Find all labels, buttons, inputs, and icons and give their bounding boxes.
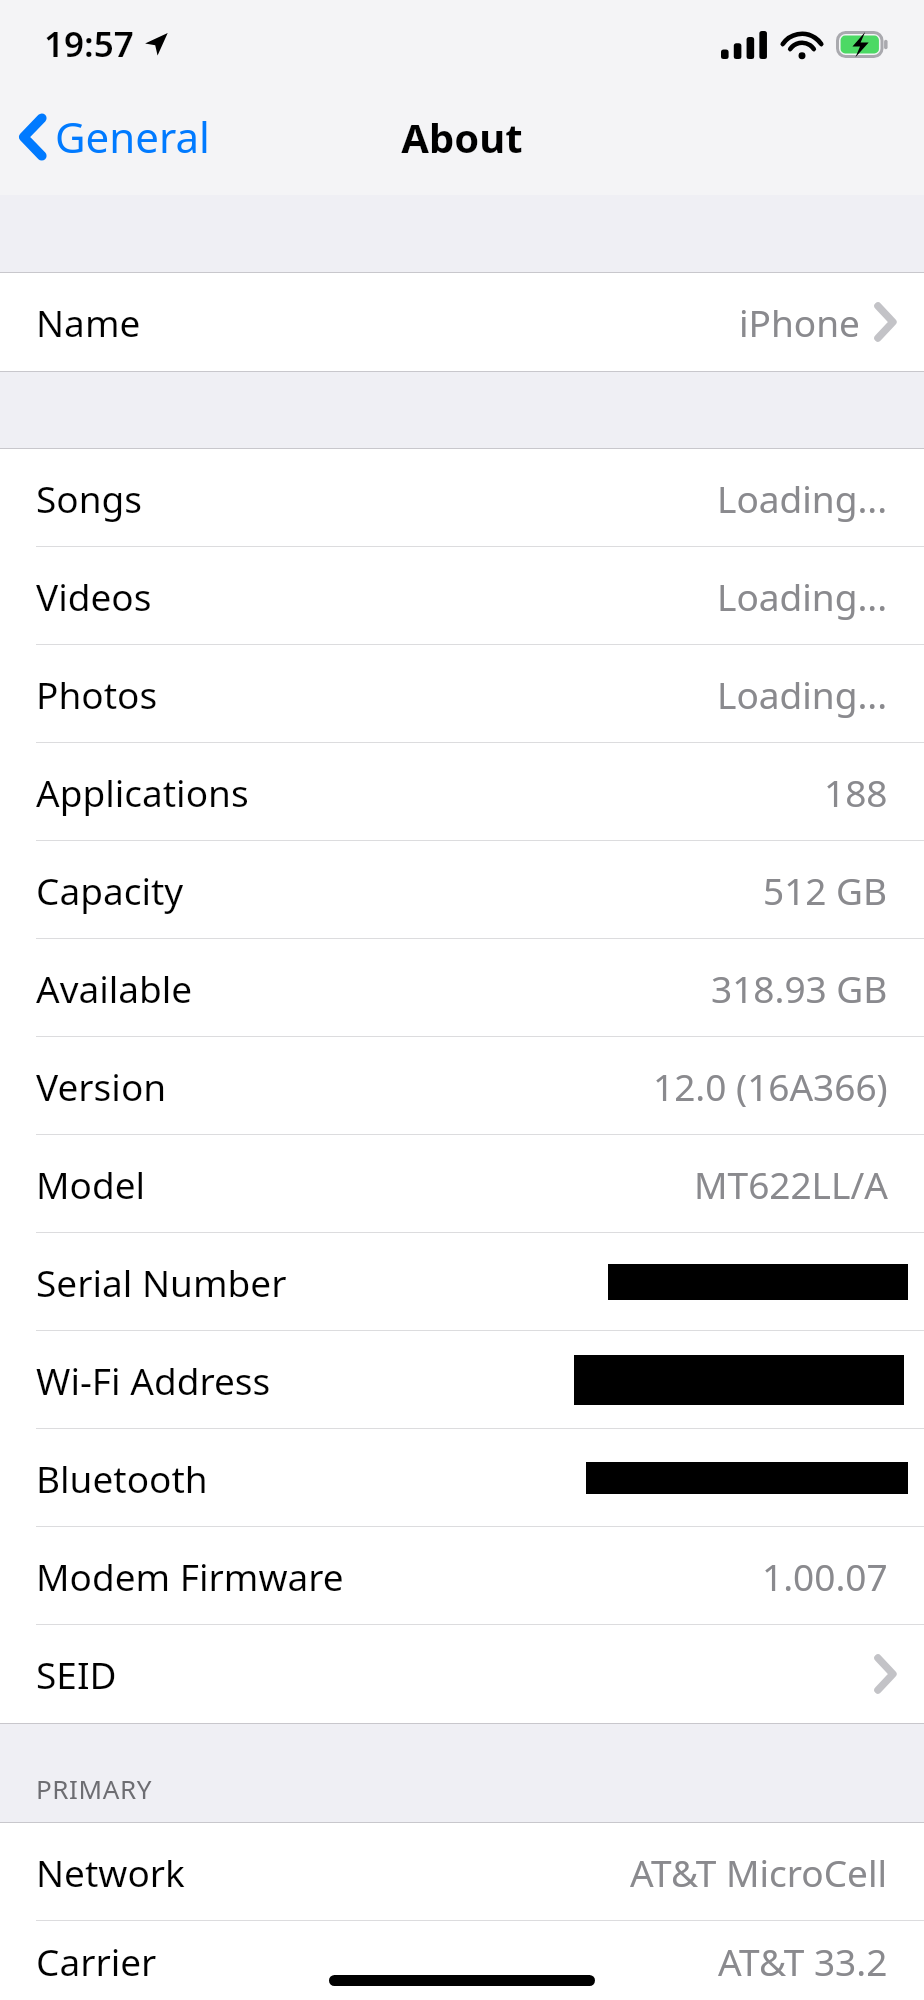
button[interactable]: Serial Number	[0, 1233, 924, 1331]
staticText: Version	[36, 1061, 167, 1111]
button[interactable]: Photos	[0, 645, 924, 743]
staticText: Loading...	[717, 669, 888, 719]
staticText: Wi-Fi Address	[36, 1355, 271, 1405]
button[interactable]: Model	[0, 1135, 924, 1233]
button[interactable]: SEID	[0, 1625, 924, 1723]
button[interactable]: Wi-Fi Address	[0, 1331, 924, 1429]
staticText: Bluetooth	[36, 1453, 208, 1503]
button[interactable]: Applications	[0, 743, 924, 841]
button[interactable]: Videos	[0, 547, 924, 645]
staticText: About	[401, 110, 523, 164]
staticText: SEID	[36, 1649, 117, 1699]
staticText: General	[55, 108, 210, 165]
staticText: Carrier	[36, 1936, 157, 1986]
staticText: Applications	[36, 767, 249, 817]
staticText: 12.0 (16A366)	[653, 1061, 888, 1111]
staticText: 19:57	[44, 20, 134, 68]
staticText: Videos	[36, 571, 152, 621]
staticText: Name	[36, 297, 141, 347]
staticText: Loading...	[717, 473, 888, 523]
button[interactable]: Songs	[0, 449, 924, 547]
staticText: iPhone	[739, 297, 860, 347]
staticText: AT&T 33.2	[718, 1936, 888, 1986]
other: Open SEID	[874, 1655, 896, 1693]
staticText: Modem Firmware	[36, 1551, 344, 1601]
staticText: MT622LL/A	[694, 1159, 888, 1209]
button[interactable]: Network	[0, 1823, 924, 1921]
button[interactable]: Carrier	[0, 1921, 924, 2000]
button[interactable]: General	[0, 98, 228, 175]
button[interactable]: Available	[0, 939, 924, 1037]
staticText: Serial Number	[36, 1257, 287, 1307]
button[interactable]: Version	[0, 1037, 924, 1135]
staticText: Network	[36, 1847, 185, 1897]
staticText: Loading...	[717, 571, 888, 621]
button[interactable]: Bluetooth	[0, 1429, 924, 1527]
staticText: Photos	[36, 669, 158, 719]
staticText: Songs	[36, 473, 143, 523]
staticText: 318.93 GB	[711, 963, 888, 1013]
staticText: Available	[36, 963, 193, 1013]
button[interactable]: Capacity	[0, 841, 924, 939]
staticText: Model	[36, 1159, 146, 1209]
other: Open Name	[874, 303, 896, 341]
staticText: 512 GB	[763, 865, 888, 915]
staticText: AT&T MicroCell	[630, 1847, 888, 1897]
staticText: PRIMARY	[36, 1771, 153, 1806]
button[interactable]: Name	[0, 273, 924, 371]
staticText: 1.00.07	[762, 1551, 888, 1601]
button[interactable]: Modem Firmware	[0, 1527, 924, 1625]
staticText: 188	[824, 767, 888, 817]
staticText: Capacity	[36, 865, 184, 915]
